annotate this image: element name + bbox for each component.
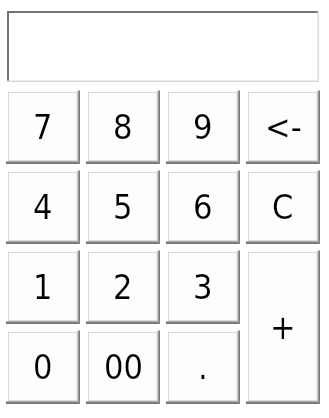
button[interactable]: 00 <box>88 332 160 404</box>
button[interactable]: <- <box>248 92 320 164</box>
staticText: . <box>198 347 208 387</box>
staticText: 4 <box>33 187 53 227</box>
staticText: 0 <box>33 347 53 387</box>
button[interactable]: 7 <box>8 92 80 164</box>
button[interactable]: 4 <box>8 172 80 244</box>
button[interactable]: C <box>248 172 320 244</box>
staticText: + <box>270 307 296 347</box>
button[interactable]: 1 <box>8 252 80 324</box>
staticText: 8 <box>113 107 133 147</box>
button[interactable]: 9 <box>168 92 240 164</box>
staticText: 00 <box>104 347 143 387</box>
staticText: 9 <box>193 107 213 147</box>
staticText: 3 <box>193 267 213 307</box>
staticText: 1 <box>33 267 53 307</box>
button[interactable]: 2 <box>88 252 160 324</box>
staticText: 6 <box>193 187 213 227</box>
button[interactable]: 6 <box>168 172 240 244</box>
staticText: 5 <box>113 187 133 227</box>
button[interactable]: + <box>248 252 320 404</box>
staticText: 7 <box>33 107 53 147</box>
staticText: C <box>272 187 294 227</box>
button[interactable]: 0 <box>8 332 80 404</box>
button[interactable]: . <box>168 332 240 404</box>
button[interactable]: 3 <box>168 252 240 324</box>
button[interactable]: 8 <box>88 92 160 164</box>
staticText: <- <box>265 107 302 147</box>
button[interactable] <box>7 11 319 82</box>
button[interactable]: 5 <box>88 172 160 244</box>
staticText: 2 <box>113 267 133 307</box>
